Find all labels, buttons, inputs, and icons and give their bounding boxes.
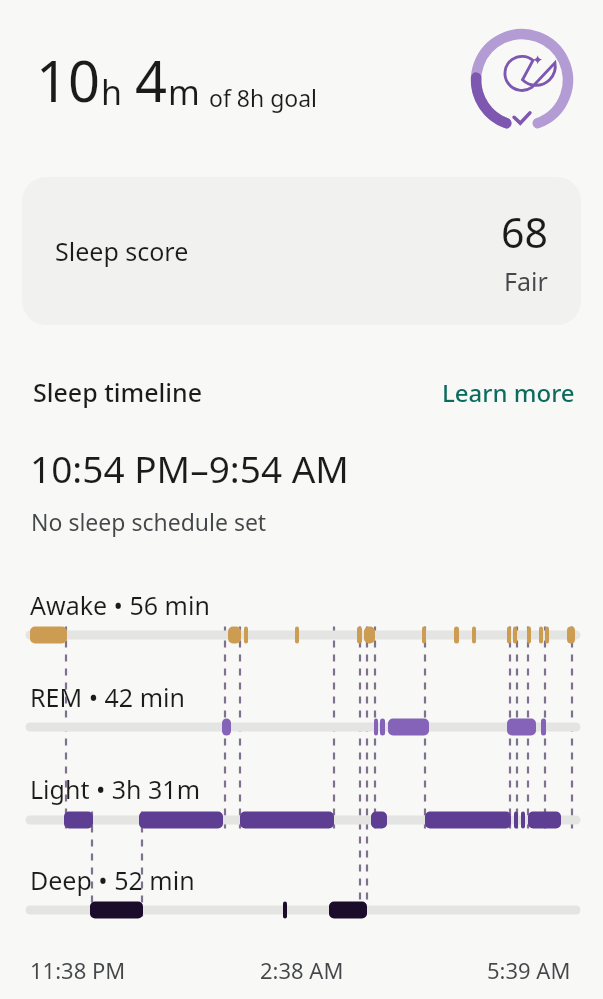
staticText: 5:39 AM bbox=[487, 955, 571, 985]
staticText: Deep • 52 min bbox=[30, 863, 195, 897]
staticText: 2:38 AM bbox=[260, 955, 344, 985]
other: Sleep goal progress bbox=[467, 25, 577, 135]
staticText: Sleep score bbox=[55, 234, 189, 268]
staticText: m bbox=[168, 69, 200, 115]
staticText: Awake • 56 min bbox=[30, 588, 210, 622]
staticText: Fair bbox=[504, 264, 548, 298]
staticText: 10 bbox=[36, 42, 101, 118]
staticText: Light • 3h 31m bbox=[30, 772, 201, 806]
staticText: 11:38 PM bbox=[30, 955, 126, 985]
staticText: Sleep timeline bbox=[33, 375, 203, 409]
staticText: 4 bbox=[135, 42, 168, 118]
staticText: 10:54 PM–9:54 AM bbox=[30, 443, 349, 493]
button[interactable]: Learn more bbox=[438, 372, 579, 413]
staticText: h bbox=[101, 69, 123, 115]
staticText: No sleep schedule set bbox=[31, 506, 267, 537]
staticText: of 8h goal bbox=[209, 82, 318, 113]
staticText: REM • 42 min bbox=[30, 680, 185, 714]
staticText: 68 bbox=[501, 204, 548, 260]
staticText: Learn more bbox=[442, 376, 575, 409]
button[interactable]: Sleep score bbox=[22, 177, 581, 325]
